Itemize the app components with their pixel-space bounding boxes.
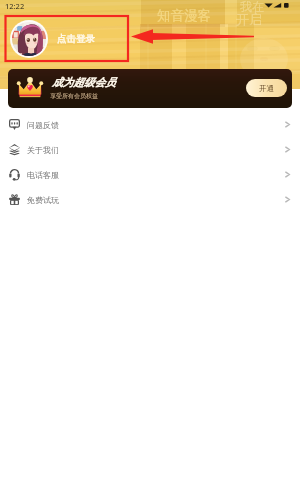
button[interactable]: 电话客服 [0,162,300,187]
staticText: 享受所有会员权益 [50,92,98,100]
staticText: 开通 [259,84,274,93]
button[interactable]: 免费试玩 [0,187,300,212]
button[interactable]: 关于我们 [0,137,300,162]
staticText: 问题反馈 [27,120,59,130]
staticText: 成为超级会员 [52,76,116,89]
staticText: 开启 [236,11,262,27]
button[interactable]: 问题反馈 [0,112,300,137]
button[interactable]: 成为超级会员 [8,69,292,108]
button[interactable]: 开通 [246,79,287,97]
staticText: 我在 [240,0,264,14]
staticText: 点击登录 [57,33,95,45]
staticText: 关于我们 [27,145,59,155]
staticText: 12:22 [5,1,25,11]
staticText: 知音漫客 [157,7,211,24]
button[interactable]: 点击登录 [57,33,95,45]
staticText: 电话客服 [27,170,59,180]
staticText: 免费试玩 [27,195,59,205]
button[interactable]: 用户头像 [12,22,46,56]
